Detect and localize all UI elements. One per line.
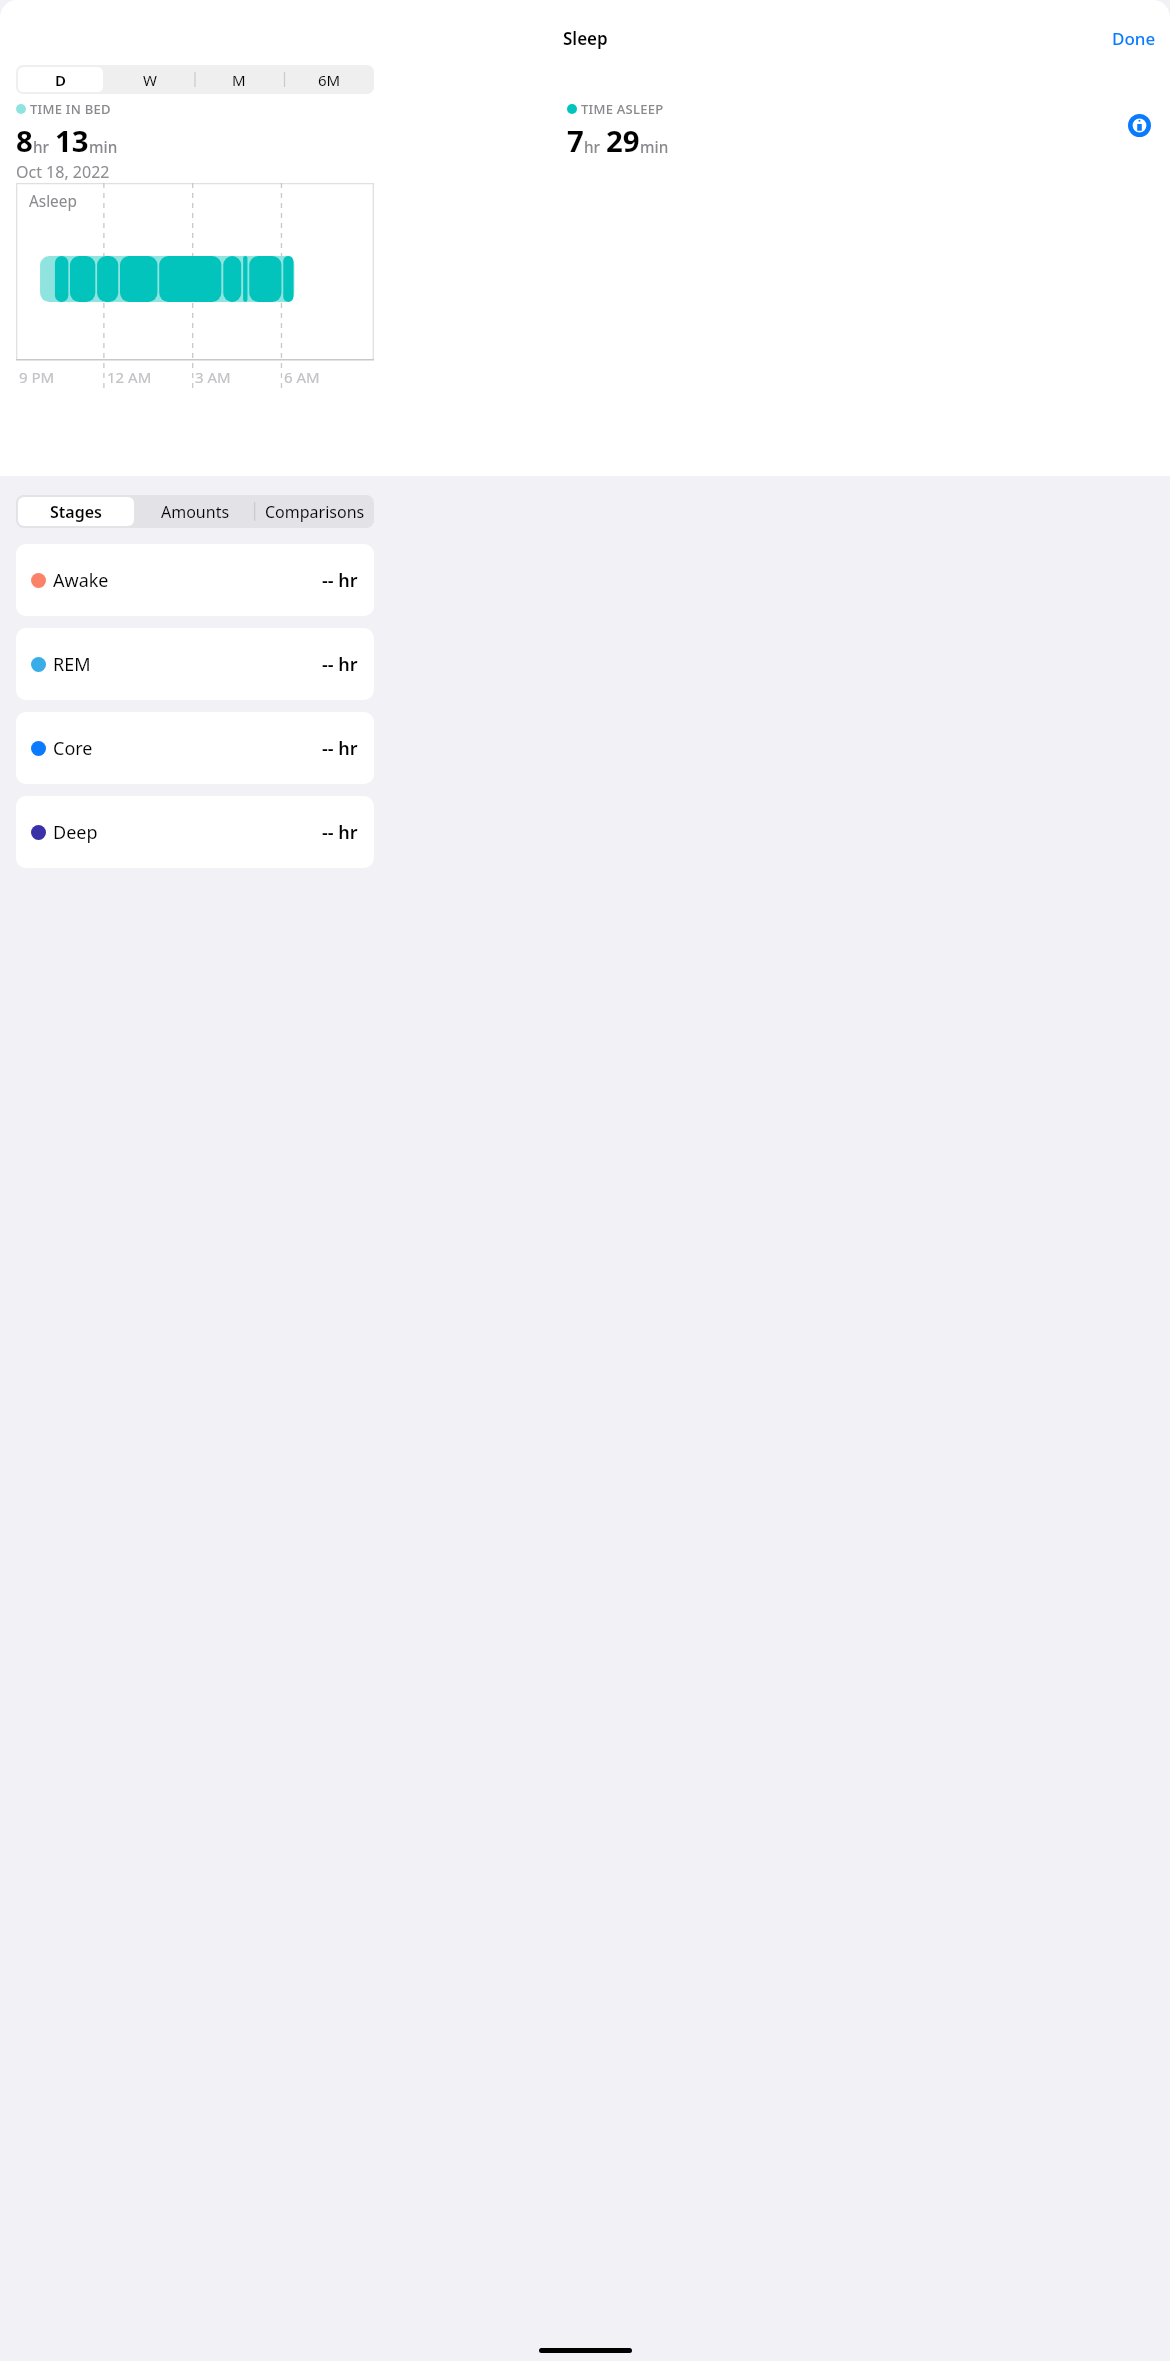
- staticText: -- hr: [322, 568, 358, 593]
- staticText: hr: [584, 137, 601, 158]
- staticText: hr: [33, 137, 50, 158]
- staticText: Amounts: [161, 501, 230, 523]
- button[interactable]: D: [18, 67, 103, 92]
- staticText: min: [640, 137, 669, 158]
- button[interactable]: W: [107, 67, 192, 92]
- staticText: 6 AM: [284, 367, 320, 387]
- staticText: 9 PM: [19, 367, 55, 387]
- button[interactable]: Core: [16, 712, 374, 784]
- staticText: 7: [567, 121, 584, 161]
- staticText: -- hr: [322, 652, 358, 677]
- staticText: 29: [606, 121, 640, 161]
- staticText: Done: [1112, 27, 1156, 50]
- staticText: 13: [55, 121, 89, 161]
- staticText: M: [232, 70, 246, 90]
- button[interactable]: Amounts: [138, 497, 253, 526]
- button[interactable]: REM: [16, 628, 374, 700]
- staticText: Stages: [50, 501, 102, 523]
- staticText: -- hr: [322, 736, 358, 761]
- staticText: Deep: [53, 820, 98, 845]
- button[interactable]: Deep: [16, 796, 374, 868]
- button[interactable]: M: [196, 67, 282, 92]
- staticText: Comparisons: [265, 501, 365, 523]
- staticText: Asleep: [29, 191, 77, 212]
- staticText: min: [89, 137, 118, 158]
- staticText: Oct 18, 2022: [16, 161, 110, 183]
- staticText: TIME ASLEEP: [581, 100, 664, 118]
- staticText: Core: [53, 736, 93, 761]
- staticText: TIME IN BED: [30, 100, 111, 118]
- button[interactable]: Stages: [18, 497, 134, 526]
- staticText: Sleep: [563, 27, 608, 50]
- staticText: 3 AM: [195, 367, 231, 387]
- button[interactable]: Information about sleep data: [1119, 100, 1159, 150]
- button[interactable]: 6M: [286, 67, 372, 92]
- staticText: W: [143, 70, 157, 90]
- staticText: 8: [16, 121, 33, 161]
- staticText: REM: [53, 652, 91, 677]
- button[interactable]: Done: [1098, 20, 1170, 57]
- staticText: D: [55, 70, 66, 90]
- staticText: -- hr: [322, 820, 358, 845]
- button[interactable]: Awake: [16, 544, 374, 616]
- staticText: 6M: [318, 70, 341, 90]
- button[interactable]: Comparisons: [257, 497, 372, 526]
- staticText: Awake: [53, 568, 109, 593]
- staticText: 12 AM: [107, 367, 152, 387]
